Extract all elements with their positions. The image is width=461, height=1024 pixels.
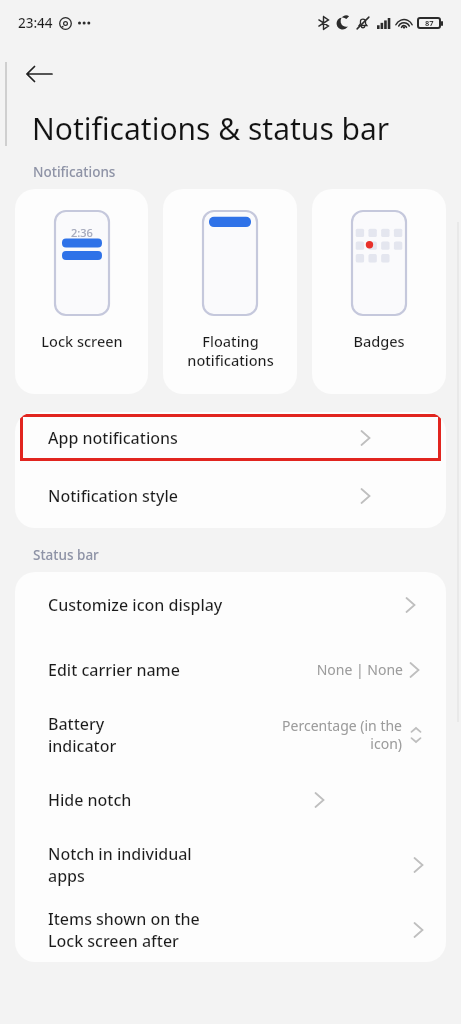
staticText: Customize icon display xyxy=(48,594,223,616)
staticText: Battery indicator xyxy=(48,713,165,757)
staticText: Notification style xyxy=(48,485,178,507)
button[interactable]: Battery indicator xyxy=(15,702,446,767)
button[interactable]: Notification style xyxy=(15,463,446,528)
staticText: Notifications xyxy=(33,163,116,181)
staticText: None | None xyxy=(316,660,403,679)
button[interactable]: Back xyxy=(26,54,66,94)
staticText: Lock screen xyxy=(41,331,123,351)
button[interactable]: App notifications xyxy=(20,414,441,461)
staticText: 2:36 xyxy=(71,225,93,240)
button[interactable]: 2:36 xyxy=(15,189,148,394)
button[interactable]: Floating notifications xyxy=(163,189,297,394)
button[interactable]: Edit carrier name xyxy=(15,637,446,702)
staticText: 87 xyxy=(425,18,434,28)
button[interactable]: Items shown on the Lock screen after xyxy=(15,897,446,962)
staticText: Notifications & status bar xyxy=(32,108,390,149)
staticText: Notch in individual apps xyxy=(48,843,231,887)
staticText: Badges xyxy=(353,331,405,351)
staticText: App notifications xyxy=(48,427,178,449)
button[interactable]: Hide notch xyxy=(15,767,446,832)
button[interactable]: Notch in individual apps xyxy=(15,832,446,897)
staticText: Status bar xyxy=(33,546,99,564)
staticText: Hide notch xyxy=(48,789,132,811)
staticText: Items shown on the Lock screen after xyxy=(48,908,231,952)
button[interactable]: Badges xyxy=(312,189,446,394)
staticText: Percentage (in the icon) xyxy=(282,716,402,753)
staticText: 23:44 xyxy=(18,14,53,32)
staticText: Edit carrier name xyxy=(48,659,180,681)
staticText: Floating notifications xyxy=(187,331,274,370)
button[interactable]: Customize icon display xyxy=(15,572,446,637)
